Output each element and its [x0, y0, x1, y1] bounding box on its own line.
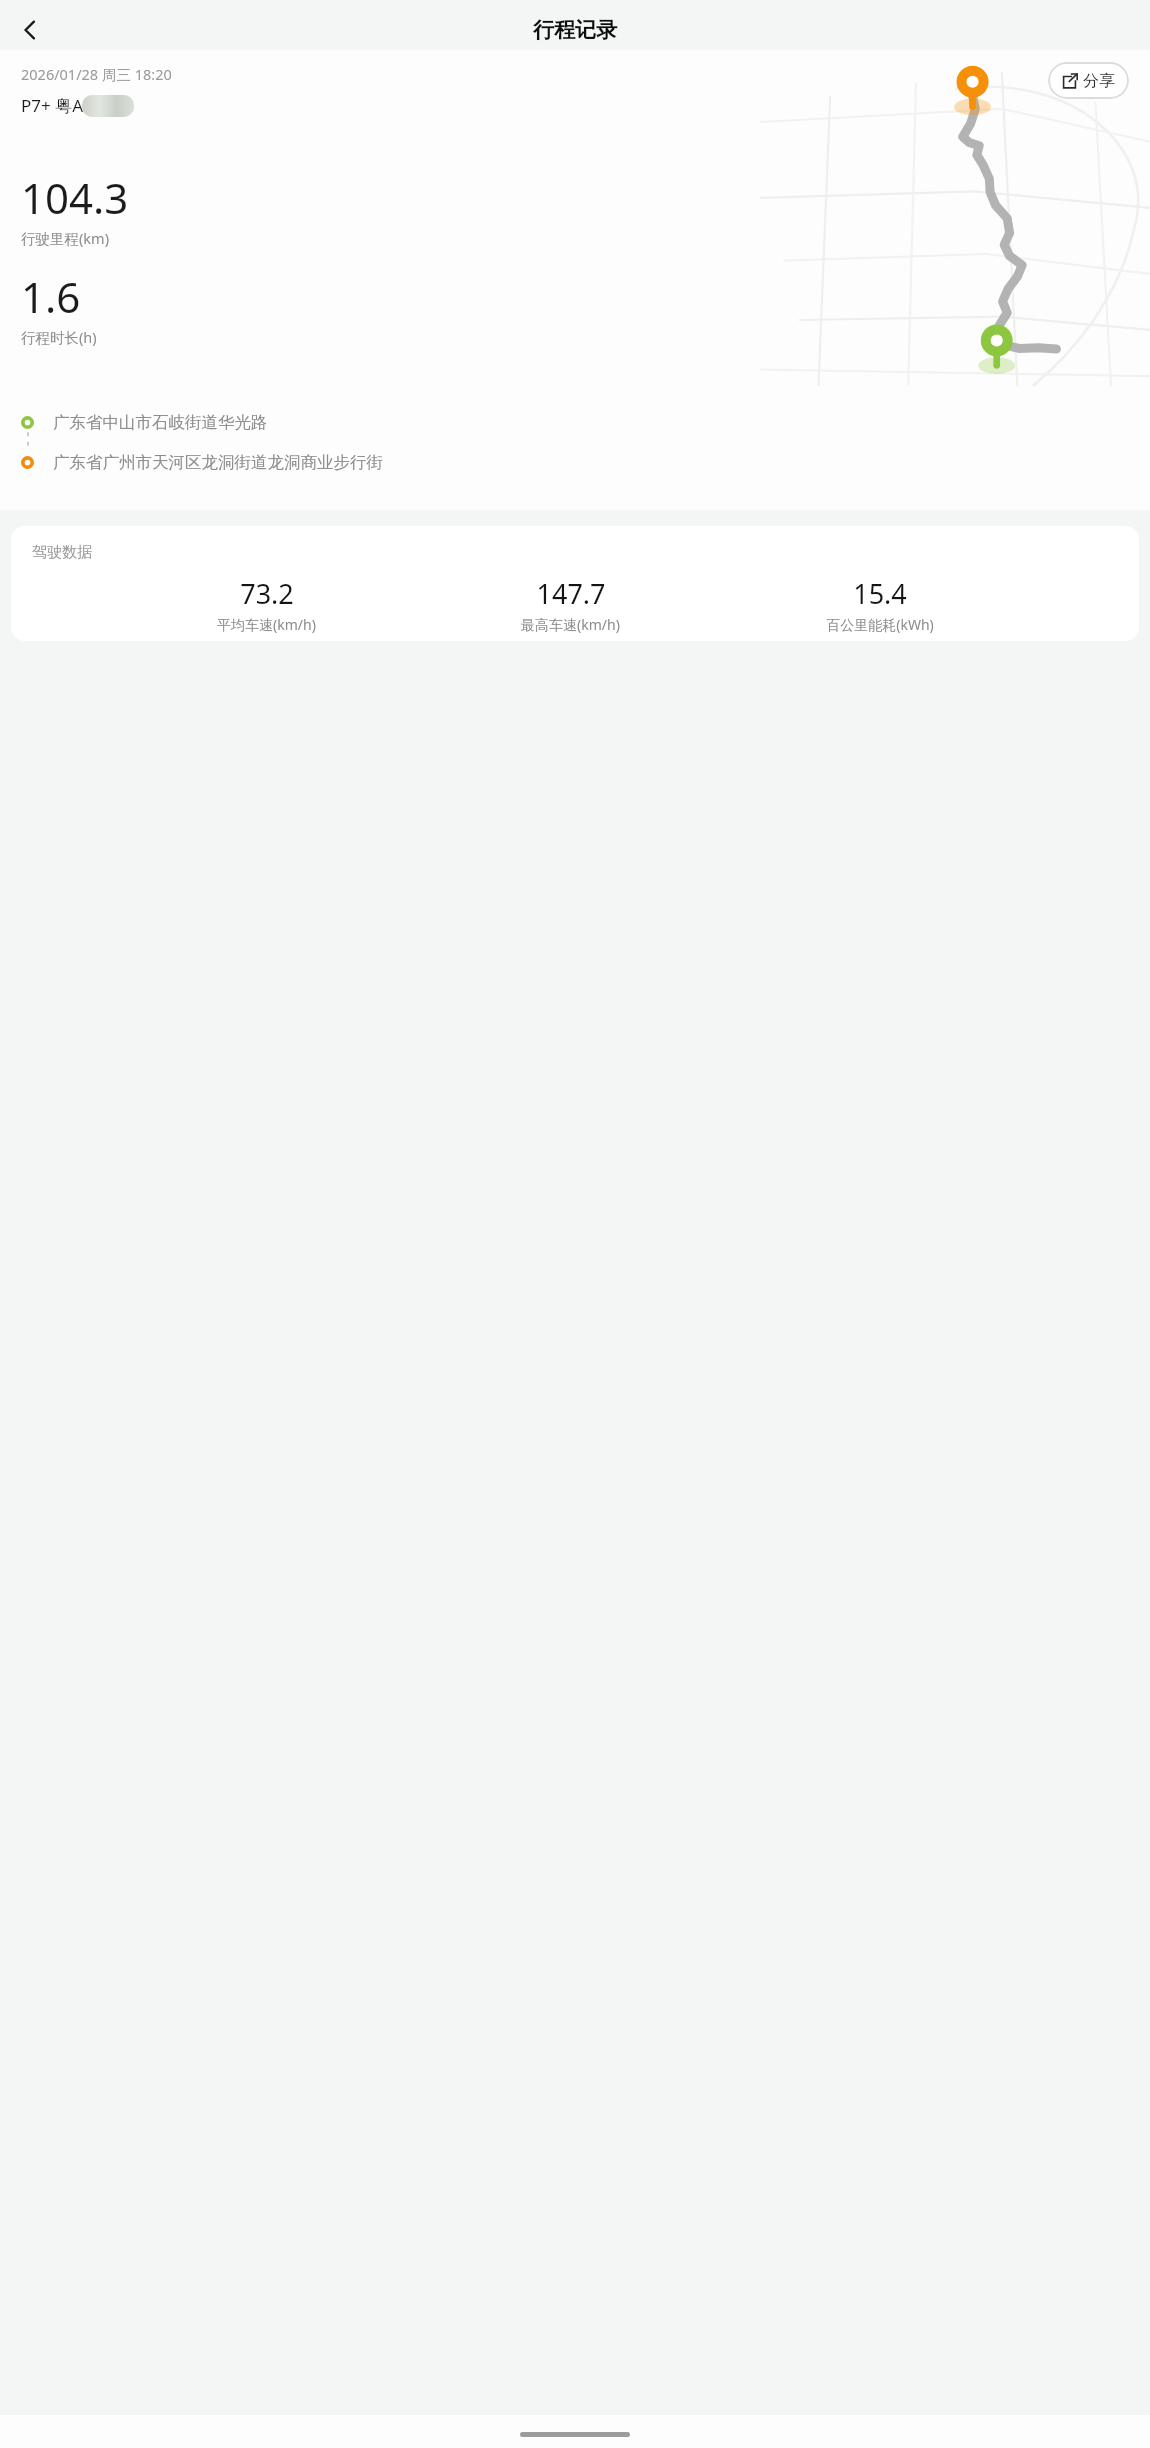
- staticText: 广东省广州市天河区龙洞街道龙洞商业步行街: [53, 452, 383, 473]
- staticText: P7+ 粤A: [21, 94, 84, 117]
- staticText: 行驶里程(km): [21, 228, 110, 248]
- staticText: 分享: [1083, 71, 1115, 91]
- staticText: 平均车速(km/h): [217, 615, 316, 634]
- button[interactable]: 驾驶数据: [11, 526, 1139, 641]
- staticText: 最高车速(km/h): [521, 615, 620, 634]
- staticText: 行程时长(h): [21, 327, 97, 347]
- staticText: 15.4: [853, 575, 907, 612]
- staticText: 驾驶数据: [32, 543, 92, 562]
- staticText: 2026/01/28 周三 18:20: [21, 64, 172, 84]
- button[interactable]: 分享: [1048, 62, 1129, 99]
- button[interactable]: 返回: [8, 10, 52, 50]
- staticText: 广东省中山市石岐街道华光路: [53, 412, 268, 433]
- staticText: 1.6: [21, 268, 81, 325]
- staticText: 行程记录: [533, 17, 617, 43]
- staticText: 104.3: [21, 169, 129, 226]
- staticText: 147.7: [536, 575, 606, 612]
- staticText: 73.2: [240, 575, 294, 612]
- staticText: 百公里能耗(kWh): [826, 615, 934, 634]
